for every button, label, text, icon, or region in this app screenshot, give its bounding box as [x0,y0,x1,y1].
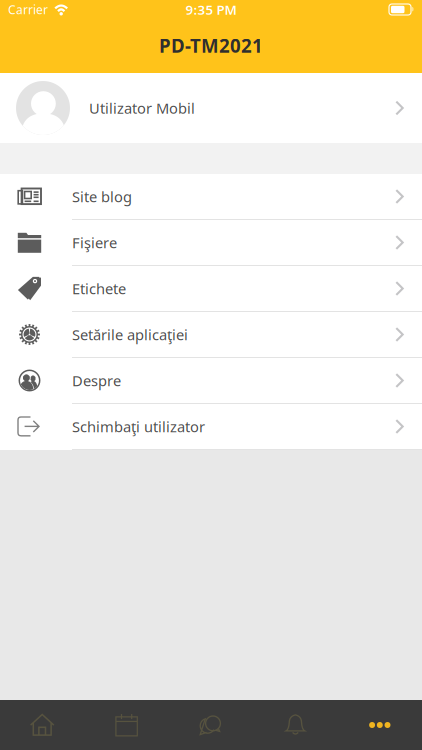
staticText: Site blog [72,187,132,206]
button[interactable]: Notifications [253,700,338,750]
button[interactable]: Messages [169,700,253,750]
staticText: Despre [72,371,121,390]
staticText: PD-TM2021 [159,33,263,58]
button[interactable]: Setările aplicaţiei [0,312,422,358]
button[interactable]: Home [0,700,84,750]
staticText: Setările aplicaţiei [72,325,188,344]
button[interactable]: Site blog [0,174,422,220]
button[interactable]: Utilizator Mobil [0,73,422,143]
staticText: Fişiere [72,233,117,252]
button[interactable]: Calendar [84,700,169,750]
button[interactable]: Schimbaţi utilizator [0,404,422,450]
button[interactable]: Despre [0,358,422,404]
staticText: 9:35 PM [185,1,236,18]
staticText: Etichete [72,279,126,298]
button[interactable]: Fişiere [0,220,422,266]
staticText: Carrier [8,1,48,17]
button[interactable]: Etichete [0,266,422,312]
staticText: Schimbaţi utilizator [72,417,205,436]
staticText: Utilizator Mobil [89,98,195,118]
button[interactable]: More [338,700,422,750]
